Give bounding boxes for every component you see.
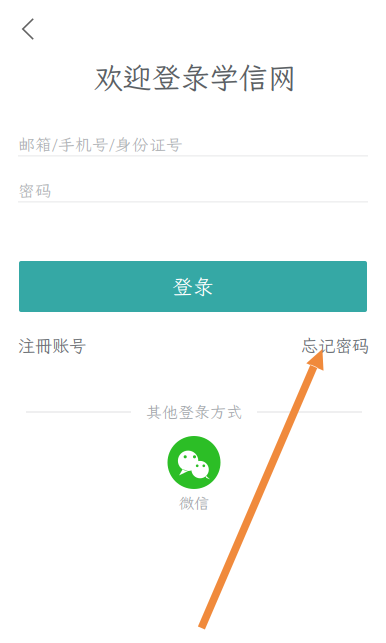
staticText: 邮箱/手机号/身份证号 <box>18 134 183 155</box>
staticText: 微信 <box>179 493 209 513</box>
button[interactable]: 注册账号 <box>18 334 86 357</box>
button[interactable]: 忘记密码 <box>301 334 369 357</box>
staticText: 注册账号 <box>18 334 86 357</box>
staticText: 其他登录方式 <box>146 401 242 423</box>
staticText: 欢迎登录学信网 <box>93 58 296 97</box>
button[interactable]: Back <box>6 7 50 51</box>
staticText: 密码 <box>18 180 52 201</box>
button[interactable]: 登录 <box>19 261 367 312</box>
staticText: 登录 <box>172 273 214 300</box>
button[interactable]: 微信 <box>167 436 220 513</box>
staticText: 忘记密码 <box>301 334 369 357</box>
